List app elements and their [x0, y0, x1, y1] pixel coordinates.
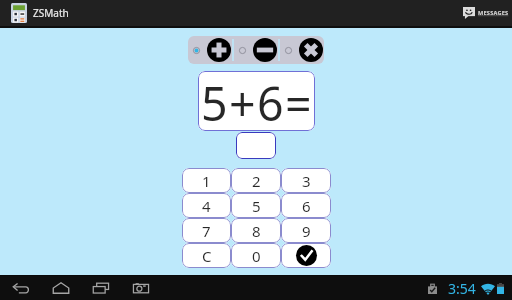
button[interactable]: 0 [231, 243, 281, 268]
button[interactable]: Recent apps [89, 276, 113, 300]
button[interactable]: Messages [459, 0, 510, 26]
button[interactable]: Screenshot [129, 276, 153, 300]
staticText: 8 [252, 221, 261, 241]
button[interactable]: Home [49, 276, 73, 300]
button[interactable]: Back [9, 276, 33, 300]
button[interactable]: Subtraction [234, 36, 278, 64]
staticText: 2 [252, 171, 261, 191]
button[interactable]: Multiplication [280, 36, 324, 64]
staticText: 3:54 [448, 279, 476, 298]
button[interactable]: C [182, 243, 231, 268]
button[interactable]: 9 [281, 218, 331, 243]
button[interactable]: 8 [231, 218, 281, 243]
button[interactable]: 4 [182, 193, 231, 218]
staticText: MESSAGES [478, 9, 509, 17]
staticText: 7 [202, 221, 211, 241]
button[interactable]: 1 [182, 168, 231, 193]
button[interactable]: 7 [182, 218, 231, 243]
button[interactable]: 5 [231, 193, 281, 218]
staticText: 5 [252, 196, 261, 216]
staticText: 1 [202, 171, 211, 191]
staticText: 4 [202, 196, 211, 216]
staticText: 6 [302, 196, 311, 216]
button[interactable]: 2 [231, 168, 281, 193]
button[interactable]: Addition [188, 36, 232, 64]
staticText: 5+6= [201, 71, 313, 131]
staticText: 0 [252, 246, 261, 266]
staticText: C [202, 246, 212, 266]
button[interactable]: 6 [281, 193, 331, 218]
button[interactable]: Submit answer [281, 243, 331, 268]
staticText: 3 [302, 171, 311, 191]
button[interactable]: Answer field [236, 132, 276, 159]
staticText: ZSMath [33, 6, 69, 20]
button[interactable]: ZSMath [0, 0, 77, 26]
staticText: 9 [302, 221, 311, 241]
button[interactable]: 3 [281, 168, 331, 193]
